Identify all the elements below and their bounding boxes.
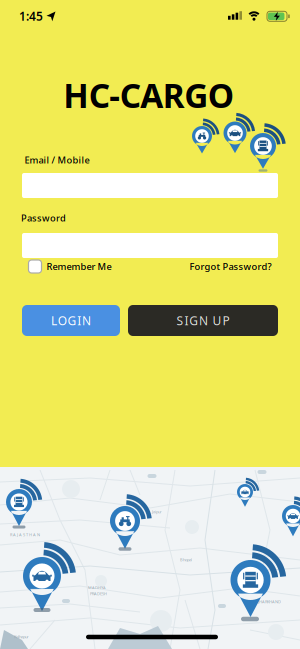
staticText: HC-CARGO	[63, 73, 234, 117]
staticText: Forgot Password?	[189, 260, 271, 273]
button[interactable]: SIGN UP	[128, 305, 278, 336]
staticText: Remember Me	[46, 260, 111, 273]
staticText: 1:45	[19, 8, 43, 24]
button[interactable]: Forgot Password?	[189, 260, 271, 273]
staticText: R A J A S T H A N	[10, 532, 40, 537]
staticText: JHARKHAND	[258, 599, 281, 604]
staticText: Bhopal	[180, 557, 192, 562]
staticText: SIGN UP	[177, 312, 229, 328]
staticText: Password	[21, 212, 66, 224]
staticText: Jaipur	[152, 509, 162, 514]
staticText: Kolhapur	[14, 634, 29, 639]
button[interactable]: Password	[22, 233, 278, 258]
staticText: Email / Mobile	[24, 154, 89, 166]
staticText: PRADESH	[90, 591, 107, 596]
button[interactable]: Remember Me	[28, 260, 111, 273]
staticText: LOGIN	[51, 312, 91, 328]
button[interactable]: LOGIN	[22, 305, 120, 336]
staticText: MADHYA	[88, 585, 106, 590]
button[interactable]: Email / Mobile	[22, 173, 278, 198]
